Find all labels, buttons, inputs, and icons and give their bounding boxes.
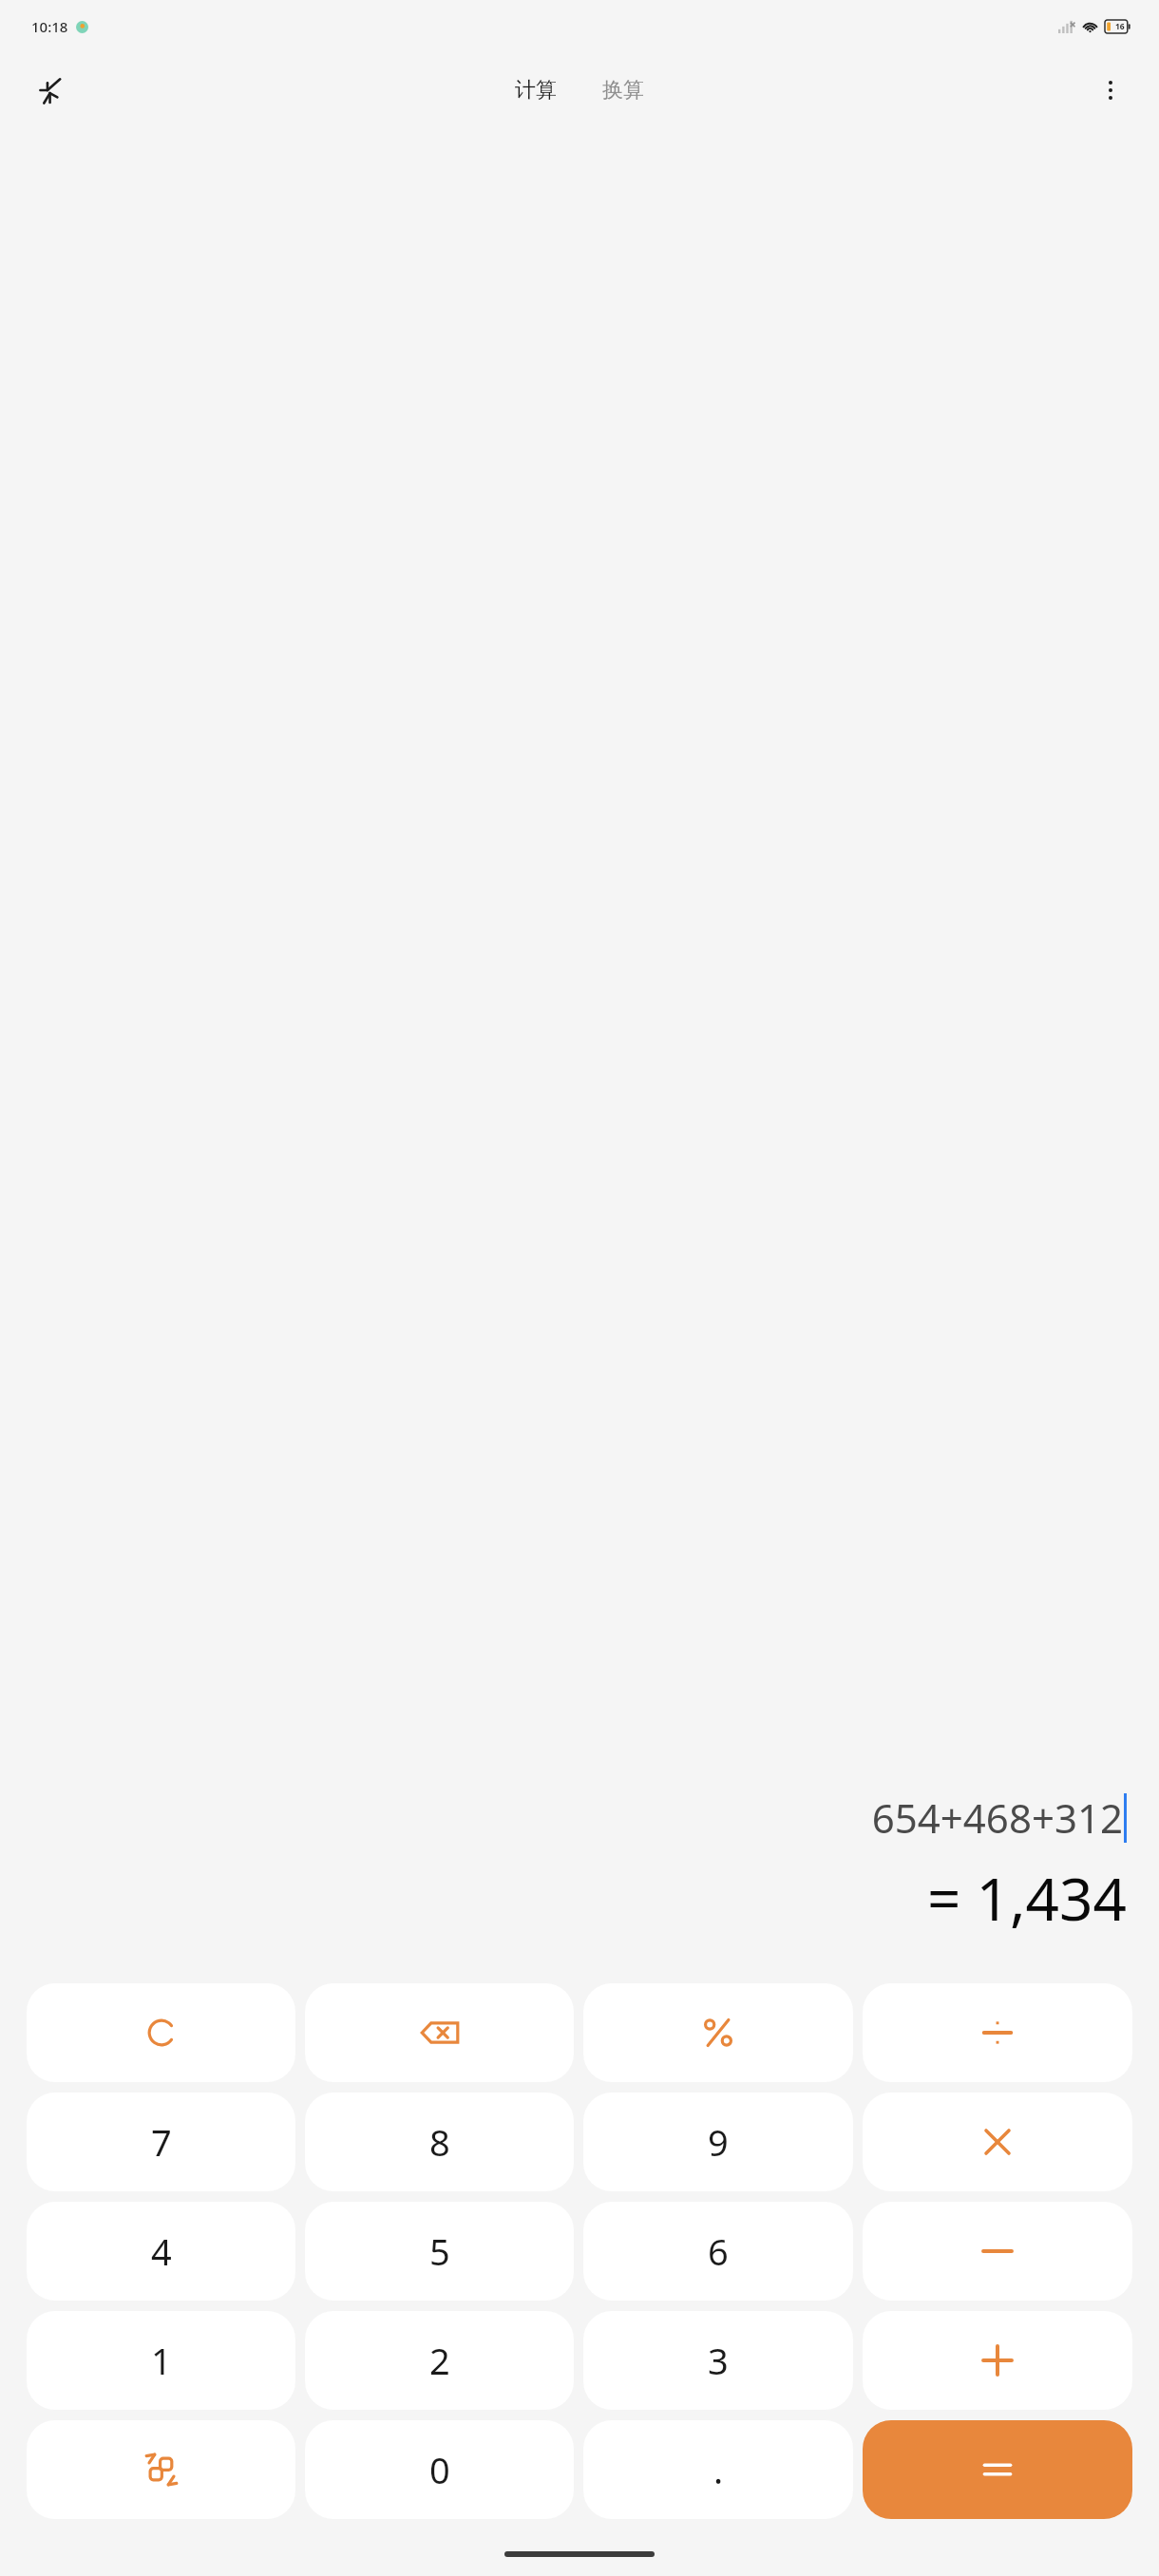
button[interactable]: Divide [863, 1983, 1132, 2082]
button[interactable]: 6 [583, 2202, 853, 2301]
button[interactable]: 3 [583, 2311, 853, 2410]
staticText: 计算 [515, 77, 557, 104]
staticText: 4 [151, 2226, 172, 2276]
button[interactable]: Multiply [863, 2093, 1132, 2191]
staticText: . [713, 2445, 724, 2494]
button[interactable]: 1 [27, 2311, 295, 2410]
staticText: 8 [429, 2117, 450, 2167]
staticText: 6 [708, 2226, 729, 2276]
button[interactable]: 0 [305, 2420, 574, 2519]
button[interactable]: Plus [863, 2311, 1132, 2410]
staticText: 0 [429, 2445, 450, 2494]
button[interactable]: 5 [305, 2202, 574, 2301]
button[interactable]: 7 [27, 2093, 295, 2191]
staticText: 换算 [602, 77, 644, 104]
staticText: = 1,434 [926, 1858, 1127, 1938]
button[interactable]: 2 [305, 2311, 574, 2410]
staticText: 5 [429, 2226, 450, 2276]
button[interactable]: Clear [27, 1983, 295, 2082]
button[interactable]: More options [1083, 63, 1138, 118]
staticText: 7 [151, 2117, 172, 2167]
staticText: 654+468+312 [871, 1790, 1123, 1845]
staticText: 1 [151, 2336, 172, 2385]
button[interactable]: 4 [27, 2202, 295, 2301]
button[interactable]: Convert [27, 2420, 295, 2519]
staticText: 16 [1115, 21, 1125, 32]
button[interactable]: 9 [583, 2093, 853, 2191]
button[interactable]: 换算 [593, 71, 654, 109]
staticText: 2 [429, 2336, 450, 2385]
button[interactable]: Percent [583, 1983, 853, 2082]
button[interactable]: 计算 [505, 71, 566, 109]
button[interactable]: Collapse [21, 63, 76, 118]
staticText: 10:18 [31, 17, 68, 36]
button[interactable]: Minus [863, 2202, 1132, 2301]
button[interactable]: . [583, 2420, 853, 2519]
staticText: 3 [708, 2336, 729, 2385]
button[interactable]: Backspace [305, 1983, 574, 2082]
staticText: 9 [708, 2117, 729, 2167]
button[interactable]: 8 [305, 2093, 574, 2191]
button[interactable]: Equals [863, 2420, 1132, 2519]
